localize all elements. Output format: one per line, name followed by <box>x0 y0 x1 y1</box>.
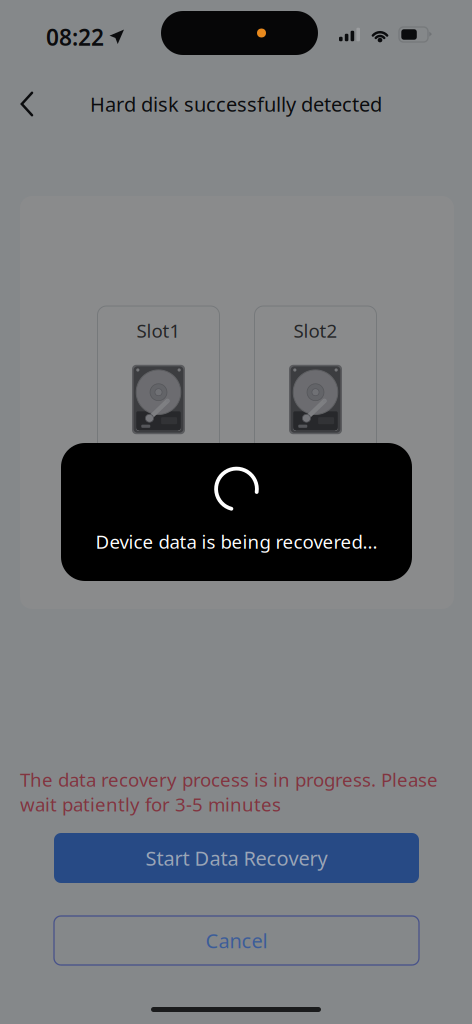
staticText: The data recovery process is in progress… <box>20 767 438 817</box>
button[interactable]: Start Data Recovery <box>54 833 419 883</box>
staticText: 08:22 <box>46 22 104 52</box>
staticText: Slot1 <box>136 318 180 343</box>
staticText: Device data is being recovered... <box>95 529 377 554</box>
button[interactable]: Cancel <box>54 916 419 965</box>
staticText: Slot2 <box>293 318 337 343</box>
button[interactable]: Back <box>4 82 50 126</box>
staticText: Cancel <box>205 927 267 954</box>
staticText: Hard disk successfully detected <box>90 91 382 117</box>
staticText: Start Data Recovery <box>145 845 327 871</box>
